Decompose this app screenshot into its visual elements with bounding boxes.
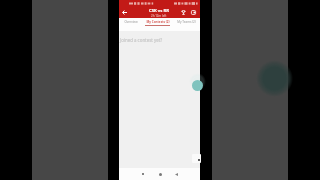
- staticText: CSK vs RR: [149, 8, 169, 14]
- button[interactable]: Overview: [119, 18, 142, 30]
- button[interactable]: Chat support: [192, 80, 203, 91]
- staticText: Joined a contest yet?: [120, 37, 163, 43]
- button[interactable]: Recent apps: [137, 168, 149, 180]
- button[interactable]: Wallet: [188, 7, 199, 18]
- staticText: 2h 12m left: [151, 14, 167, 18]
- button[interactable]: Home: [154, 168, 166, 180]
- staticText: My Contests (2): [146, 20, 170, 24]
- button[interactable]: Back: [170, 168, 182, 180]
- button[interactable]: Winners: [178, 7, 189, 18]
- staticText: My Teams (2): [177, 20, 196, 24]
- staticText: Overview: [124, 20, 138, 24]
- button[interactable]: Back: [119, 7, 130, 18]
- button[interactable]: My Contests (2): [142, 18, 173, 30]
- button[interactable]: Help: [192, 154, 201, 163]
- button[interactable]: My Teams (2): [173, 18, 200, 30]
